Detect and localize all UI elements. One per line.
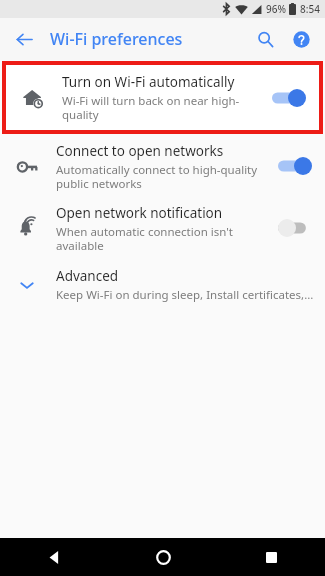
button[interactable]: Toggle on — [269, 83, 309, 113]
staticText: Keep Wi-Fi on during sleep, Install cert… — [56, 287, 315, 303]
staticText: Connect to open networks — [56, 142, 224, 160]
staticText: Wi-Fi will turn back on near high-qualit… — [62, 93, 261, 122]
button[interactable]: Open network notification — [0, 197, 325, 259]
staticText: Advanced — [56, 267, 119, 285]
button[interactable]: Advanced — [0, 259, 325, 311]
staticText: Wi-Fi preferences — [50, 28, 183, 50]
button[interactable]: Help — [283, 21, 319, 57]
button[interactable]: Toggle off — [275, 213, 315, 243]
button[interactable]: Home — [109, 538, 217, 576]
button[interactable]: Search — [247, 21, 283, 57]
staticText: 8:54 — [300, 2, 320, 16]
button[interactable]: Turn on Wi-Fi automatically — [6, 65, 319, 130]
button[interactable]: Toggle on — [275, 151, 315, 181]
staticText: Open network notification — [56, 204, 223, 222]
staticText: 96% — [266, 2, 286, 16]
button[interactable]: Connect to open networks — [0, 135, 325, 197]
button[interactable]: Back — [6, 21, 42, 57]
button[interactable]: Recent apps — [217, 538, 325, 576]
staticText: Automatically connect to high-quality pu… — [56, 162, 258, 191]
staticText: Turn on Wi-Fi automatically — [62, 73, 235, 91]
button[interactable]: Back — [0, 538, 109, 576]
staticText: When automatic connection isn't availabl… — [56, 224, 233, 253]
